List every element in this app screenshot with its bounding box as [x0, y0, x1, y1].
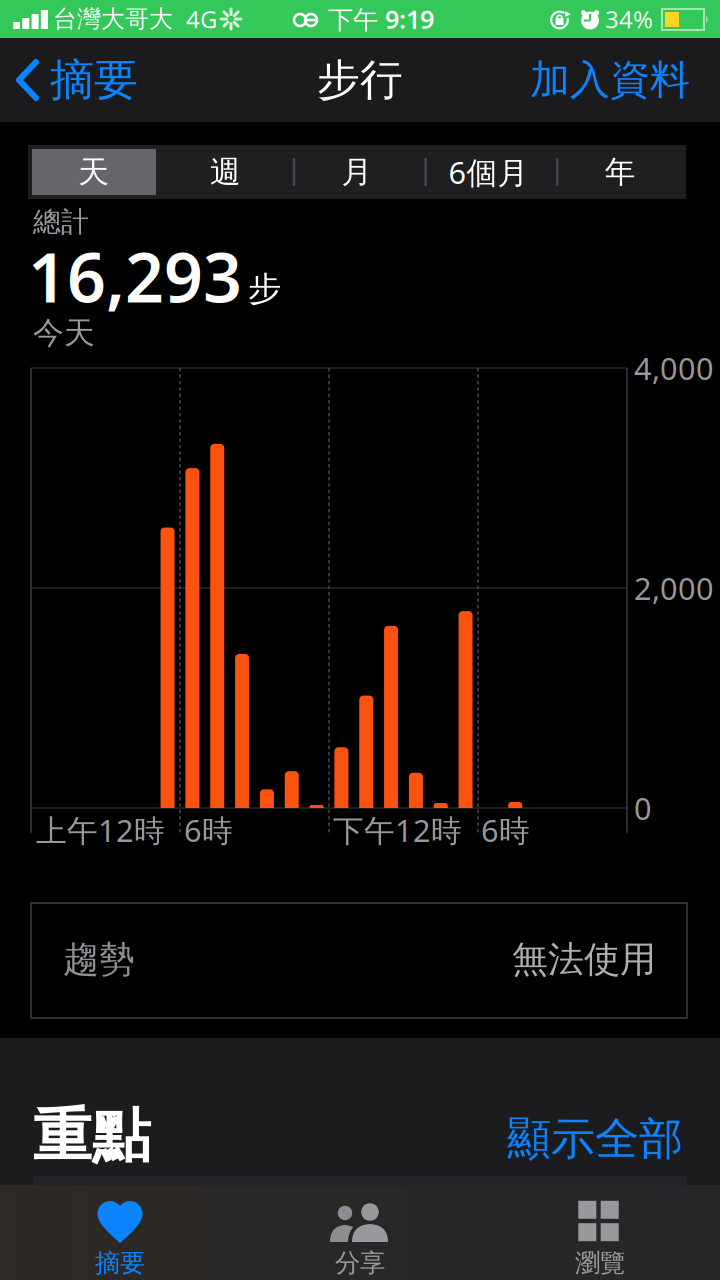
button[interactable]: 分享 [240, 1185, 480, 1280]
button[interactable]: 天 [28, 145, 159, 199]
button[interactable]: 顯示全部 [443, 1107, 683, 1171]
staticText: 年 [605, 153, 636, 191]
button[interactable]: 加入資料 [480, 38, 700, 122]
staticText: 16,293 [28, 231, 242, 321]
button[interactable]: 瀏覽 [480, 1185, 720, 1280]
button[interactable]: 趨勢 [30, 902, 688, 1019]
staticText: 加入資料 [530, 55, 690, 104]
staticText: 34% [605, 3, 653, 35]
staticText: 4G [186, 3, 217, 35]
staticText: 週 [210, 153, 241, 191]
button[interactable]: 返回摘要 [0, 38, 170, 122]
staticText: 下午12時 [333, 810, 462, 850]
staticText: 下午 9:19 [328, 2, 434, 36]
staticText: 分享 [335, 1247, 385, 1278]
staticText: 6時 [184, 810, 233, 850]
staticText: 上午12時 [36, 810, 165, 850]
staticText: 月 [341, 153, 372, 191]
staticText: 趨勢 [63, 937, 135, 982]
button[interactable]: 週 [160, 145, 291, 199]
staticText: 4,000 [634, 348, 714, 388]
staticText: 無法使用 [512, 937, 656, 982]
staticText: 步行 [317, 54, 403, 106]
staticText: 瀏覽 [575, 1247, 625, 1278]
staticText: 6時 [481, 810, 530, 850]
staticText: 摘要 [95, 1247, 145, 1278]
staticText: 2,000 [634, 568, 714, 608]
staticText: 天 [78, 153, 109, 191]
button[interactable]: 摘要 [0, 1185, 240, 1280]
staticText: 重點 [33, 1100, 151, 1172]
staticText: 今天 [33, 314, 95, 352]
staticText: 台灣大哥大 [53, 4, 173, 34]
staticText: 總計 [33, 205, 89, 239]
button[interactable]: 年 [555, 145, 686, 199]
staticText: 顯示全部 [507, 1112, 683, 1166]
button[interactable]: 月 [291, 145, 422, 199]
staticText: 步 [248, 268, 281, 309]
button[interactable]: 6個月 [423, 145, 554, 199]
staticText: 6個月 [449, 152, 529, 192]
staticText: 摘要 [50, 53, 138, 107]
staticText: 0 [634, 788, 652, 828]
